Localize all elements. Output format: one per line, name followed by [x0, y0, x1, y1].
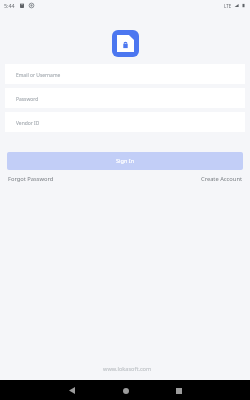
staticText: 5:44: [4, 2, 15, 9]
staticText: Sign In: [116, 157, 135, 165]
button[interactable]: Home: [118, 383, 133, 398]
button[interactable]: Sign In: [7, 152, 243, 170]
button[interactable]: Password: [5, 88, 245, 108]
staticText: Forgot Password: [8, 175, 54, 183]
button[interactable]: Create Account: [198, 172, 246, 186]
staticText: Email or Username: [16, 72, 61, 79]
staticText: Create Account: [201, 175, 243, 183]
staticText: LTE: [224, 3, 232, 9]
button[interactable]: Vendor ID: [5, 112, 245, 132]
button[interactable]: Email or Username: [5, 64, 245, 84]
button[interactable]: Forgot Password: [5, 172, 57, 186]
button[interactable]: Back: [64, 383, 79, 398]
staticText: Password: [16, 96, 39, 103]
staticText: www.lokasoft.com: [103, 365, 152, 373]
button[interactable]: Recent apps: [171, 383, 186, 398]
staticText: Vendor ID: [16, 120, 40, 127]
